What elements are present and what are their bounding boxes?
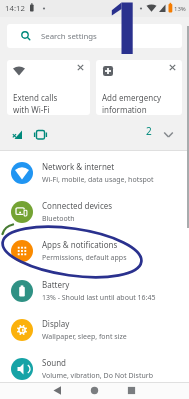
- staticText: Connected devices: [42, 200, 113, 211]
- button[interactable]: [76, 382, 113, 399]
- staticText: Network & internet: [42, 161, 115, 172]
- button[interactable]: Connected devices: [0, 192, 189, 231]
- staticText: Wallpaper, sleep, font size: [42, 332, 127, 342]
- staticText: Apps & notifications: [42, 239, 118, 250]
- staticText: Search settings: [41, 31, 97, 42]
- staticText: Volume, vibration, Do Not Disturb: [42, 371, 153, 381]
- staticText: Wi-Fi, mobile, data usage, hotspot: [42, 175, 154, 185]
- staticText: Add emergency: [102, 92, 162, 103]
- staticText: Permissions, default apps: [42, 253, 127, 263]
- button[interactable]: Add emergency: [96, 60, 182, 115]
- staticText: 2: [146, 124, 152, 138]
- button[interactable]: Extend calls: [7, 60, 90, 115]
- staticText: Extend calls: [13, 92, 58, 103]
- staticText: 13% - Should last until about 16:45: [42, 293, 156, 303]
- button[interactable]: 2: [0, 117, 189, 150]
- staticText: Bluetooth: [42, 214, 75, 224]
- button[interactable]: Battery: [0, 271, 189, 310]
- button[interactable]: Network & internet: [0, 153, 189, 192]
- button[interactable]: Search settings: [7, 24, 182, 48]
- button[interactable]: [39, 382, 76, 399]
- button[interactable]: Sound: [0, 349, 189, 388]
- staticText: with Wi-Fi: [13, 104, 50, 115]
- staticText: Sound: [42, 357, 67, 368]
- button[interactable]: Display: [0, 310, 189, 349]
- staticText: information: [102, 104, 147, 115]
- staticText: 13%: [174, 5, 186, 13]
- button[interactable]: [113, 382, 150, 399]
- staticText: 14:12: [5, 3, 25, 14]
- staticText: Display: [42, 318, 70, 329]
- button[interactable]: Apps & notifications: [0, 231, 189, 270]
- staticText: Battery: [42, 279, 70, 290]
